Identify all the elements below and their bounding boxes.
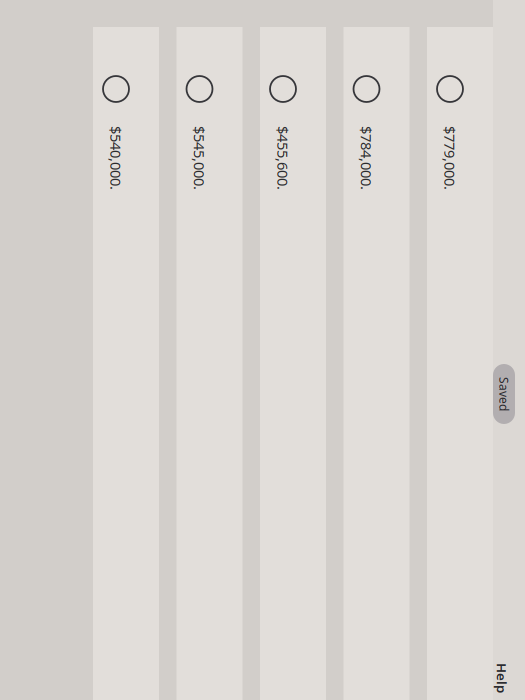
staticText: Saved bbox=[289, 100, 323, 116]
staticText: $545,000. bbox=[38, 403, 102, 423]
staticText: $455,600. bbox=[38, 320, 102, 339]
button[interactable]: $455,600. bbox=[0, 286, 525, 352]
staticText: $779,000. bbox=[38, 153, 102, 172]
button[interactable]: Saved bbox=[276, 97, 336, 119]
button[interactable]: $784,000. bbox=[0, 203, 525, 269]
button[interactable]: $545,000. bbox=[0, 370, 525, 436]
button[interactable]: $540,000. bbox=[0, 453, 525, 519]
staticText: $784,000. bbox=[38, 236, 102, 256]
staticText: $540,000. bbox=[38, 487, 102, 506]
button[interactable]: $779,000. bbox=[0, 119, 525, 185]
